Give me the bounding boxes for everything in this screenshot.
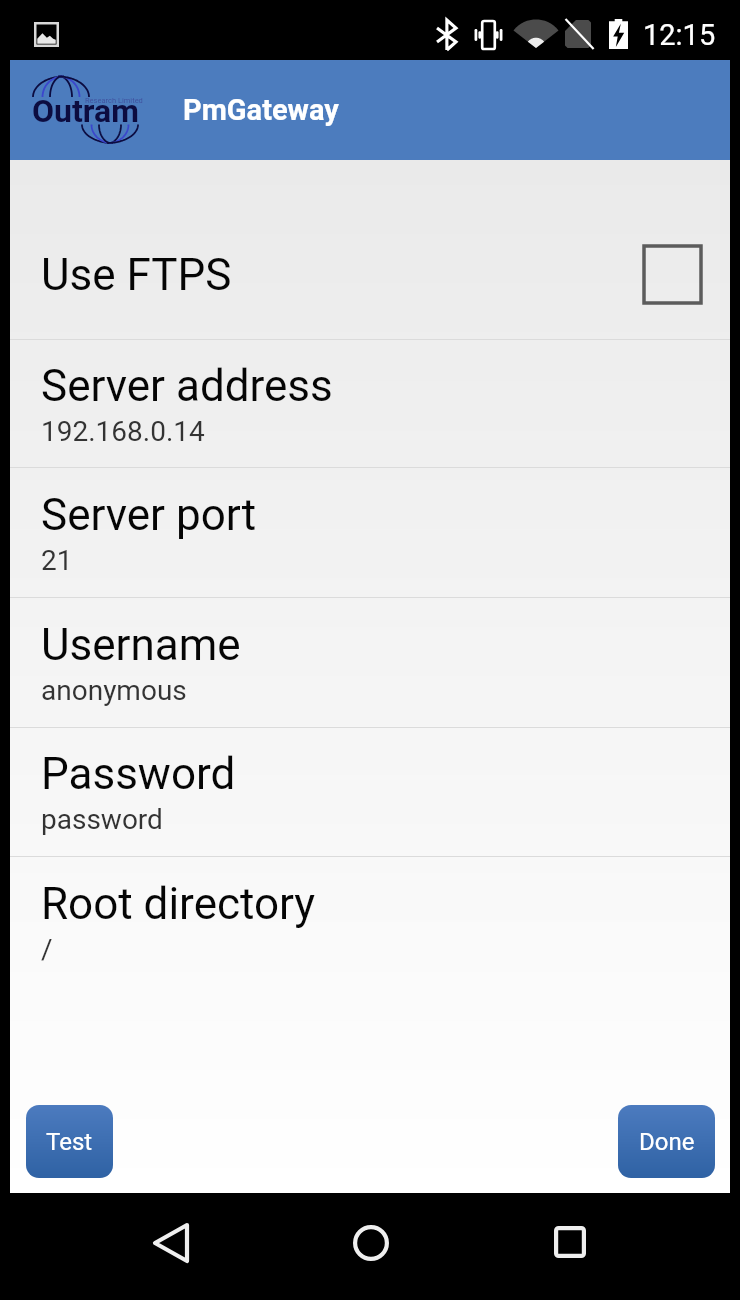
staticText: Done: [639, 1128, 695, 1156]
staticText: Outram: [32, 92, 139, 130]
button[interactable]: Back: [136, 1208, 206, 1278]
staticText: anonymous: [41, 674, 187, 707]
button[interactable]: Username: [10, 598, 730, 727]
button[interactable]: Recent apps: [535, 1207, 605, 1277]
staticText: Root directory: [41, 878, 316, 930]
button[interactable]: Done: [618, 1105, 715, 1178]
staticText: Password: [41, 748, 236, 800]
staticText: 192.168.0.14: [41, 415, 205, 448]
staticText: Server port: [41, 489, 257, 541]
staticText: /: [41, 933, 53, 966]
staticText: Username: [41, 619, 241, 671]
staticText: Use FTPS: [41, 249, 232, 301]
staticText: 21: [41, 544, 73, 577]
button[interactable]: Test: [26, 1105, 113, 1178]
button[interactable]: Server port: [10, 468, 730, 597]
button[interactable]: Root directory: [10, 857, 730, 986]
staticText: 12:15: [643, 18, 716, 52]
staticText: password: [41, 803, 163, 836]
button[interactable]: Home: [336, 1208, 406, 1278]
staticText: PmGateway: [183, 93, 339, 127]
staticText: Server address: [41, 360, 333, 412]
button[interactable]: Password: [10, 728, 730, 856]
staticText: Research Limited: [85, 96, 143, 105]
button[interactable]: Server address: [10, 340, 730, 467]
button[interactable]: Use FTPS: [10, 210, 730, 339]
staticText: Test: [46, 1128, 93, 1156]
